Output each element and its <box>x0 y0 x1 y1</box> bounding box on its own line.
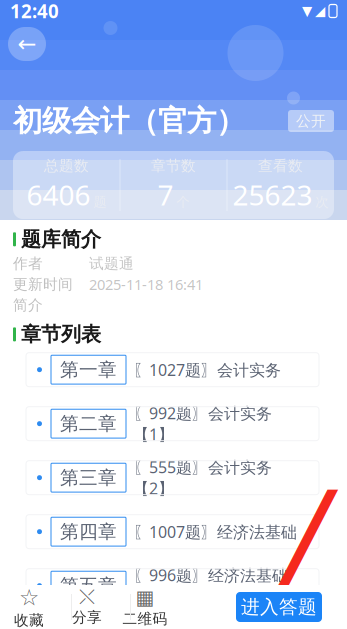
staticText: 〖992题〗会计实务【1】 <box>133 402 272 445</box>
staticText: ◢ <box>315 3 325 18</box>
staticText: 二维码 <box>122 610 167 628</box>
button[interactable]: ☆ <box>0 585 58 629</box>
staticText: 第三章 <box>60 466 117 489</box>
staticText: ╱ <box>259 491 333 629</box>
staticText: 12:40 <box>10 0 59 23</box>
staticText: 第四章 <box>60 520 117 543</box>
staticText: 6406 <box>26 176 90 213</box>
button[interactable]: 第四章 <box>26 515 319 549</box>
staticText: 题 <box>93 194 106 210</box>
button[interactable]: 第一章 <box>26 353 319 387</box>
staticText: 进入答题 <box>241 595 317 618</box>
staticText: 公开 <box>296 112 326 130</box>
staticText: 第一章 <box>60 358 117 381</box>
staticText: ☆ <box>19 585 39 610</box>
staticText: 第五章 <box>60 574 117 597</box>
button[interactable]: 第五章 <box>26 569 319 603</box>
staticText: 次 <box>315 194 328 210</box>
staticText: 简介 <box>13 296 43 314</box>
button[interactable]: 第二章 <box>26 407 319 441</box>
staticText: 章节数 <box>151 157 196 175</box>
staticText: 〖996题〗经济法基础【1】 <box>133 564 288 607</box>
staticText: 题库简介 <box>21 227 101 252</box>
staticText: 第二章 <box>60 412 117 435</box>
staticText: 〖555题〗会计实务【2】 <box>133 456 272 499</box>
staticText: 7 <box>157 176 173 213</box>
staticText: 更新时间 <box>13 275 73 293</box>
staticText: 作者 <box>13 255 43 273</box>
staticText: 分享 <box>72 608 102 626</box>
staticText: 〖1007题〗经济法基础 <box>133 521 297 542</box>
staticText: 25623 <box>232 176 312 213</box>
staticText: ▦ <box>135 586 154 609</box>
staticText: 〖1027题〗会计实务 <box>133 359 281 380</box>
button[interactable]: ⤬ <box>58 585 116 629</box>
staticText: 初级会计（官方） <box>13 103 245 139</box>
staticText: 查看数 <box>258 157 303 175</box>
staticText: ⤬ <box>79 588 95 607</box>
button[interactable]: 进入答题 <box>236 592 322 622</box>
staticText: ▼ <box>302 3 312 18</box>
button[interactable]: 第三章 <box>26 461 319 495</box>
staticText: 试题通 <box>89 255 134 273</box>
staticText: 章节列表 <box>21 322 101 347</box>
staticText: 2025-11-18 16:41 <box>89 275 203 294</box>
button[interactable]: ▦ <box>116 585 174 629</box>
button[interactable]: 返回 <box>8 27 46 61</box>
staticText: 总题数 <box>44 157 89 175</box>
staticText: ← <box>17 31 36 57</box>
staticText: 收藏 <box>14 611 44 629</box>
